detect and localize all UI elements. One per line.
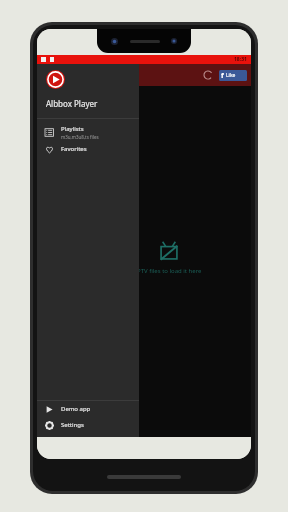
staticText: 18:31 [234, 56, 247, 63]
staticText: Settings [61, 421, 84, 429]
staticText: IPTV files to load it here [135, 267, 202, 275]
button[interactable]: f [219, 70, 247, 81]
staticText: m3u,m3u8,ts files [61, 134, 99, 140]
staticText: Demo app [61, 405, 91, 413]
staticText: Like [226, 72, 236, 79]
button[interactable]: Favorites [37, 141, 139, 157]
button[interactable]: Playlists [37, 123, 139, 141]
staticText: f [221, 71, 224, 81]
staticText: Favorites [61, 145, 87, 153]
button[interactable]: Settings [37, 417, 139, 433]
button[interactable]: Refresh [199, 66, 217, 84]
button[interactable]: Demo app [37, 401, 139, 417]
staticText: Albbox Player [46, 98, 98, 109]
staticText: Playlists [61, 125, 84, 133]
